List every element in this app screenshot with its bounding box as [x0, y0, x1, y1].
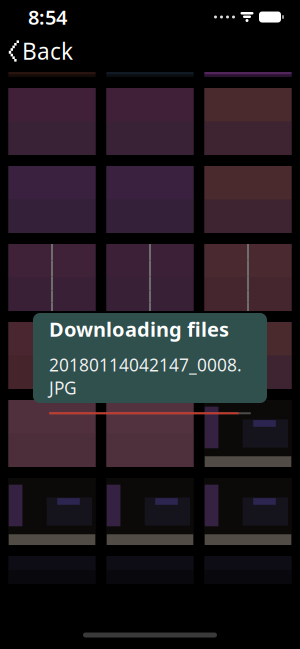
- button[interactable]: Back: [0, 32, 73, 70]
- staticText: Downloading files: [49, 316, 229, 342]
- staticText: 8:54: [28, 4, 67, 30]
- staticText: Back: [22, 36, 73, 66]
- staticText: 20180114042147_0008.JPG: [49, 353, 242, 399]
